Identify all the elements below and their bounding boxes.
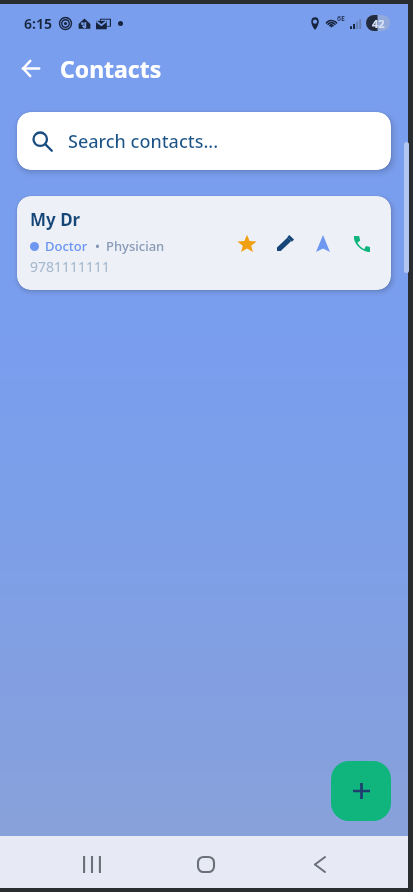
button[interactable]: Back <box>14 51 48 85</box>
button[interactable]: Recents <box>70 842 114 886</box>
staticText: 6:15 <box>24 14 52 33</box>
button[interactable]: Edit <box>273 231 297 255</box>
button[interactable]: My Dr <box>17 196 391 290</box>
staticText: 6E <box>337 14 345 24</box>
button[interactable]: Call <box>349 231 373 255</box>
staticText: • <box>95 237 100 255</box>
button[interactable]: Add contact <box>331 761 391 821</box>
button[interactable]: Favorite <box>235 231 259 255</box>
staticText: Search contacts... <box>68 129 219 154</box>
staticText: Contacts <box>60 53 162 84</box>
staticText: 9781111111 <box>30 257 111 276</box>
staticText: My Dr <box>30 208 81 231</box>
staticText: 42 <box>372 16 385 31</box>
button[interactable]: Search contacts... <box>17 112 391 170</box>
staticText: Physician <box>106 237 165 255</box>
staticText: Doctor <box>45 237 88 255</box>
button[interactable]: Navigate <box>311 231 335 255</box>
button[interactable]: Back <box>298 842 342 886</box>
button[interactable]: Home <box>184 842 228 886</box>
